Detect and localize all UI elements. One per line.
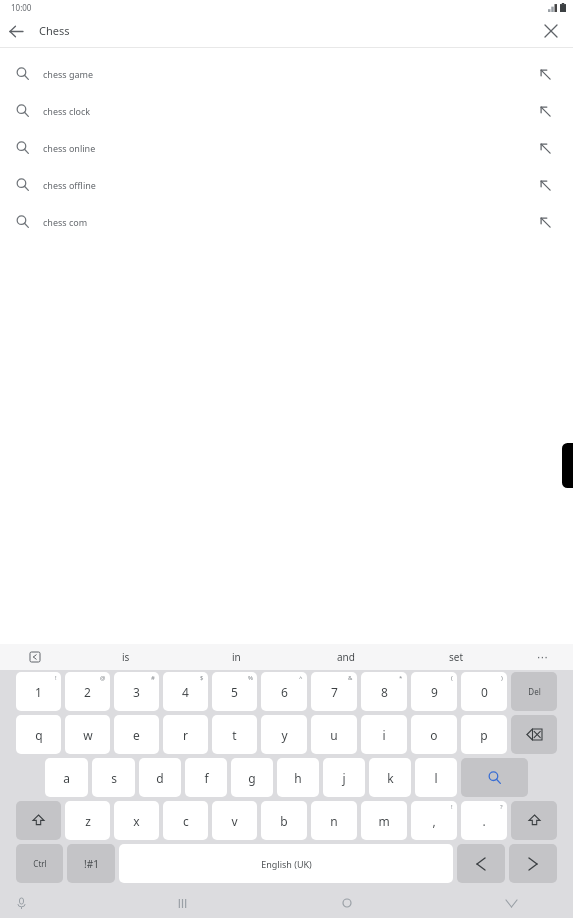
button[interactable]: Insert chess clock [527,93,563,129]
button[interactable]: 0 [461,672,507,711]
button[interactable]: Insert chess online [527,130,563,166]
button[interactable]: chess clock [0,92,573,129]
button[interactable]: Insert chess com [527,204,563,240]
staticText: u [330,727,338,743]
button[interactable]: in [181,644,291,670]
button[interactable]: v [212,801,257,840]
button[interactable]: m [361,801,407,840]
staticText: English (UK) [261,858,312,870]
button[interactable]: chess offline [0,166,573,203]
staticText: ? [500,803,503,811]
button[interactable]: a [45,758,88,797]
button[interactable]: d [139,758,181,797]
staticText: 10:00 [11,2,32,13]
staticText: m [378,813,390,829]
button[interactable]: Back [0,15,32,47]
staticText: 9 [431,684,438,700]
staticText: h [294,770,302,786]
button[interactable]: Chess [39,23,533,38]
button[interactable]: 6 [261,672,307,711]
button[interactable]: Clipboard [0,644,70,670]
button[interactable]: Insert chess game [527,56,563,92]
button[interactable]: , [411,801,457,840]
button[interactable]: z [65,801,110,840]
button[interactable]: e [114,715,159,754]
button[interactable]: set [401,644,511,670]
button[interactable]: 4 [163,672,208,711]
button[interactable]: k [369,758,411,797]
button[interactable]: 1 [16,672,61,711]
button[interactable]: chess online [0,129,573,166]
button[interactable]: n [311,801,357,840]
staticText: y [281,727,288,743]
button[interactable]: i [361,715,407,754]
button[interactable]: shift [16,801,61,840]
staticText: 3 [133,684,140,700]
button[interactable]: s [92,758,135,797]
button[interactable]: 3 [114,672,159,711]
button[interactable]: x [114,801,159,840]
button[interactable]: Home [334,890,360,916]
button[interactable]: and [291,644,401,670]
button[interactable]: 7 [311,672,357,711]
button[interactable]: !#1 [67,844,115,883]
staticText: s [111,770,117,786]
button[interactable]: l [415,758,457,797]
staticText: $ [200,674,204,682]
button[interactable]: p [461,715,507,754]
button[interactable]: Clear [533,14,569,47]
button[interactable]: q [16,715,61,754]
button[interactable]: u [311,715,357,754]
button[interactable]: chess game [0,55,573,92]
button[interactable]: c [163,801,208,840]
staticText: x [133,813,140,829]
button[interactable]: chess com [0,203,573,240]
button[interactable]: 9 [411,672,457,711]
button[interactable]: 8 [361,672,407,711]
staticText: i [382,727,386,743]
button[interactable]: b [261,801,307,840]
staticText: f [204,770,209,786]
staticText: . [482,813,486,829]
button[interactable]: English (UK) [119,844,453,883]
button[interactable]: t [212,715,257,754]
button[interactable]: j [323,758,365,797]
staticText: ( [451,674,453,682]
button[interactable]: is [70,644,181,670]
staticText: l [434,770,438,786]
button[interactable]: Ctrl [16,844,63,883]
button[interactable]: right [509,844,557,883]
button[interactable]: w [65,715,110,754]
button[interactable]: backspace [511,715,557,754]
button[interactable]: h [277,758,319,797]
staticText: ! [55,674,57,682]
button[interactable]: 2 [65,672,110,711]
button[interactable]: r [163,715,208,754]
button[interactable]: y [261,715,307,754]
staticText: in [232,650,241,664]
button[interactable]: More options [511,644,573,670]
button[interactable]: o [411,715,457,754]
button[interactable]: f [185,758,227,797]
button[interactable]: shift [511,801,557,840]
button[interactable]: 5 [212,672,257,711]
staticText: 0 [481,684,488,700]
staticText: chess online [43,142,527,154]
staticText: b [280,813,288,829]
staticText: !#1 [84,857,99,871]
button[interactable]: Voice input [11,893,31,913]
button[interactable]: . [461,801,507,840]
button[interactable]: left [457,844,505,883]
button[interactable]: g [231,758,273,797]
staticText: chess clock [43,105,527,117]
button[interactable]: Del [511,672,557,711]
staticText: 4 [182,684,189,700]
staticText: * [399,674,403,682]
staticText: o [430,727,438,743]
button[interactable]: Hide keyboard [498,890,524,916]
staticText: 1 [35,684,42,700]
button[interactable]: search [461,758,528,797]
button[interactable]: Recents [169,890,195,916]
staticText: 5 [231,684,238,700]
button[interactable]: Insert chess offline [527,167,563,203]
